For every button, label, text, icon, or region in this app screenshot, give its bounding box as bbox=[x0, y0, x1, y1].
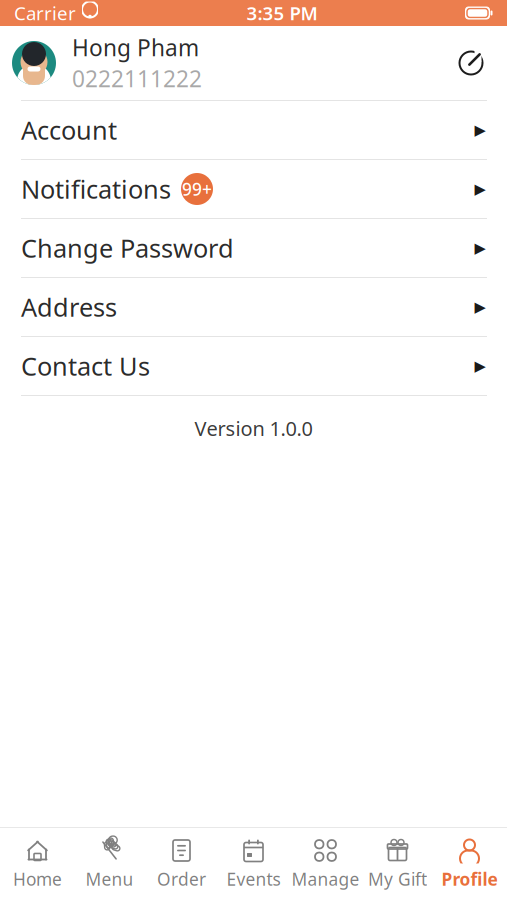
staticText: Carrier bbox=[14, 1, 76, 25]
staticText: ▶ bbox=[474, 358, 485, 374]
button[interactable]: Notifications bbox=[0, 160, 507, 219]
staticText: Version 1.0.0 bbox=[194, 415, 312, 442]
staticText: My Gift bbox=[368, 867, 427, 890]
button[interactable]: Change Password bbox=[0, 219, 507, 278]
button[interactable]: Profile bbox=[433, 835, 505, 893]
staticText: 99+ bbox=[182, 177, 212, 200]
staticText: Address bbox=[21, 290, 117, 324]
staticText: ▶ bbox=[474, 181, 485, 197]
staticText: 3:35 PM bbox=[246, 1, 317, 25]
button[interactable]: Events bbox=[217, 835, 289, 893]
button[interactable]: Home bbox=[1, 835, 73, 893]
button[interactable]: Order bbox=[145, 835, 217, 893]
staticText: Notifications bbox=[21, 172, 171, 206]
button[interactable]: Address bbox=[0, 278, 507, 337]
staticText: Home bbox=[13, 867, 62, 890]
staticText: ▶ bbox=[474, 122, 485, 138]
button[interactable]: Manage bbox=[289, 835, 361, 893]
staticText: Contact Us bbox=[21, 349, 150, 383]
button[interactable]: Menu bbox=[73, 835, 145, 893]
staticText: ▶ bbox=[474, 299, 485, 315]
staticText: Manage bbox=[291, 867, 359, 890]
button[interactable]: My Gift bbox=[361, 835, 433, 893]
staticText: Profile bbox=[441, 867, 497, 890]
button[interactable]: Account bbox=[0, 101, 507, 160]
staticText: Account bbox=[21, 113, 117, 147]
staticText: 0222111222 bbox=[72, 63, 202, 94]
staticText: Order bbox=[157, 867, 206, 890]
staticText: Menu bbox=[85, 867, 133, 890]
staticText: Change Password bbox=[21, 231, 234, 265]
staticText: Hong Pham bbox=[72, 32, 199, 62]
button[interactable]: Edit profile bbox=[451, 43, 491, 83]
staticText: Events bbox=[226, 867, 280, 890]
button[interactable]: Contact Us bbox=[0, 337, 507, 396]
staticText: ▶ bbox=[474, 240, 485, 256]
